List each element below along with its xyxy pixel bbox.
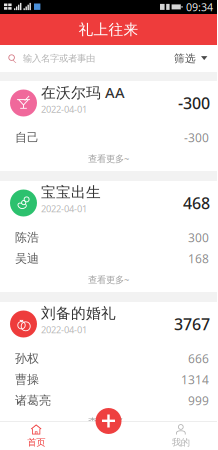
staticText: -300 [178, 92, 210, 114]
button[interactable]: Add [95, 408, 121, 434]
button[interactable]: 查看更多~ [0, 267, 217, 292]
staticText: 1314 [181, 371, 209, 387]
button[interactable]: 首页 [0, 422, 72, 450]
staticText: 输入名字或者事由 [23, 53, 95, 64]
button[interactable]: 筛选 [174, 45, 217, 72]
staticText: 2022-04-01 [41, 202, 87, 215]
staticText: 3767 [174, 313, 210, 335]
button[interactable]: 曹操 [0, 367, 217, 388]
button[interactable]: 宝宝出生 [0, 181, 217, 225]
staticText: 468 [183, 192, 210, 214]
staticText: 查看更多~ [88, 152, 129, 165]
button[interactable]: 查看更多~ [0, 409, 217, 434]
staticText: 自己 [15, 130, 39, 145]
staticText: 首页 [27, 437, 45, 448]
button[interactable]: 我的 [145, 422, 217, 450]
button[interactable]: 查看更多~ [0, 146, 217, 171]
staticText: 刘备的婚礼 [41, 304, 116, 322]
staticText: 孙权 [15, 351, 39, 366]
staticText: 查看更多~ [88, 415, 129, 428]
staticText: 吴迪 [15, 251, 39, 266]
staticText: 在沃尔玛 AA [41, 83, 125, 102]
staticText: 2022-04-01 [41, 103, 87, 115]
staticText: 我的 [172, 437, 190, 448]
staticText: 礼上往来 [78, 20, 138, 38]
button[interactable]: 自己 [0, 125, 217, 146]
button[interactable]: 陈浩 [0, 225, 217, 246]
staticText: 09:34 [186, 0, 213, 14]
staticText: -300 [184, 129, 209, 145]
staticText: 诸葛亮 [15, 393, 51, 408]
staticText: 陈浩 [15, 230, 39, 245]
button[interactable]: 吴迪 [0, 246, 217, 267]
button[interactable]: 诸葛亮 [0, 388, 217, 409]
button[interactable]: 在沃尔玛 AA [0, 81, 217, 125]
staticText: 666 [188, 350, 209, 366]
staticText: 168 [188, 250, 209, 266]
button[interactable]: 孙权 [0, 346, 217, 367]
button[interactable]: 刘备的婚礼 [0, 302, 217, 346]
staticText: 999 [188, 392, 209, 408]
staticText: 2022-04-01 [41, 323, 87, 336]
staticText: 宝宝出生 [41, 183, 101, 201]
staticText: 300 [188, 229, 209, 245]
staticText: 曹操 [15, 372, 39, 387]
button[interactable]: 输入名字或者事由 [0, 45, 174, 72]
staticText: 查看更多~ [88, 273, 129, 286]
staticText: 筛选 [174, 52, 196, 65]
